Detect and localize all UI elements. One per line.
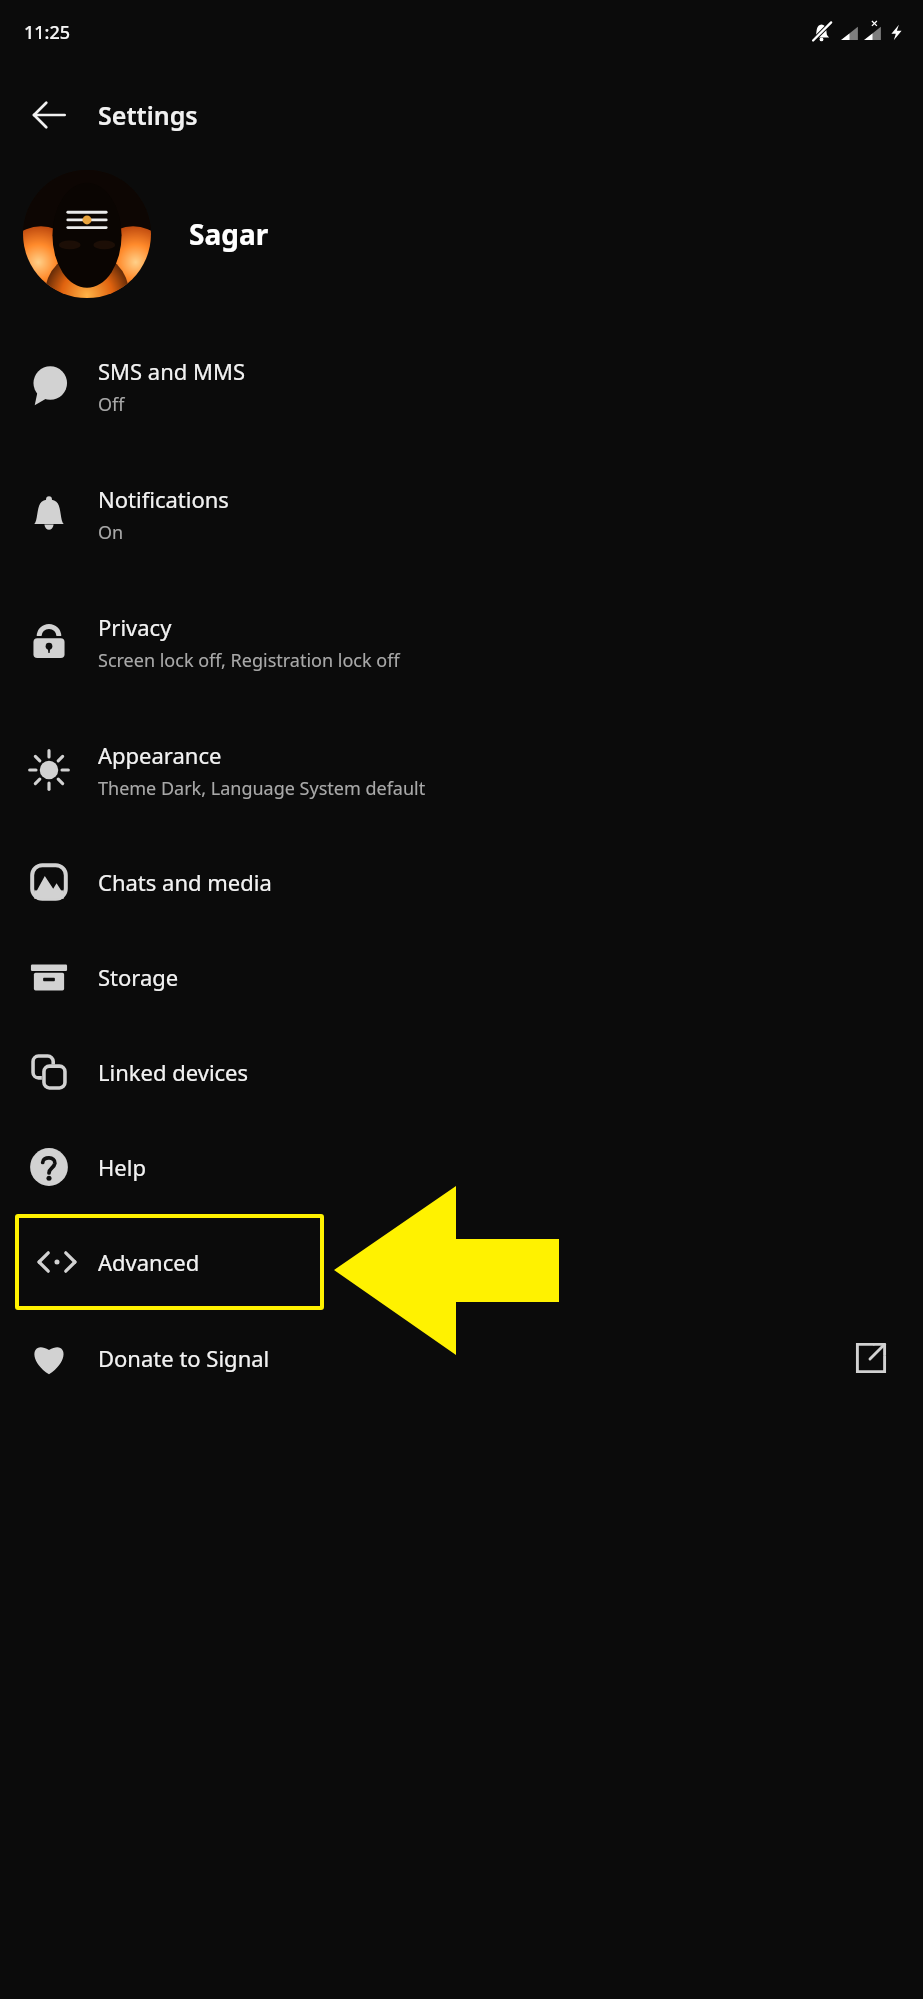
button[interactable]: Storage (0, 929, 923, 1024)
button[interactable]: Back (16, 82, 82, 148)
other: Open link (851, 1338, 891, 1378)
button[interactable]: Donate to Signal (0, 1310, 923, 1406)
staticText: On (98, 520, 124, 545)
button[interactable]: Notifications (0, 450, 923, 578)
button[interactable]: Privacy (0, 578, 923, 706)
staticText: Storage (98, 962, 179, 992)
button[interactable]: SMS and MMS (0, 322, 923, 450)
staticText: SMS and MMS (98, 356, 246, 386)
button[interactable]: Help (0, 1119, 923, 1214)
staticText: Linked devices (98, 1057, 249, 1087)
staticText: Off (98, 392, 125, 417)
staticText: Theme Dark, Language System default (98, 776, 426, 801)
button[interactable]: Advanced (15, 1214, 324, 1310)
staticText: Chats and media (98, 867, 272, 897)
staticText: Sagar (189, 215, 269, 253)
button[interactable]: Appearance (0, 706, 923, 834)
staticText: Screen lock off, Registration lock off (98, 648, 400, 673)
staticText: Advanced (98, 1247, 200, 1277)
staticText: Help (98, 1152, 146, 1182)
button[interactable]: Sagar (0, 166, 923, 302)
staticText: Privacy (98, 612, 172, 642)
staticText: Notifications (98, 484, 229, 514)
button[interactable]: Linked devices (0, 1024, 923, 1119)
staticText: Appearance (98, 740, 222, 770)
button[interactable]: Chats and media (0, 834, 923, 929)
staticText: 11:25 (24, 20, 71, 45)
staticText: Donate to Signal (98, 1343, 270, 1373)
staticText: Settings (98, 98, 198, 132)
